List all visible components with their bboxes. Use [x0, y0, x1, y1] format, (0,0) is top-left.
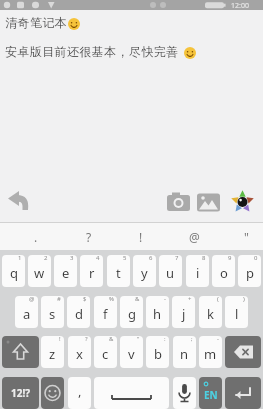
staticText: u: [166, 264, 175, 282]
button[interactable]: x: [68, 336, 91, 368]
button[interactable]: j: [172, 296, 195, 328]
staticText: 0: [254, 255, 258, 262]
staticText: 7: [175, 255, 179, 262]
staticText: q: [10, 264, 18, 282]
staticText: 2: [44, 255, 48, 262]
button[interactable]: i: [186, 255, 209, 287]
button[interactable]: [4, 188, 36, 216]
button[interactable]: !: [128, 223, 154, 250]
button[interactable]: d: [67, 296, 90, 328]
button[interactable]: [173, 377, 196, 409]
staticText: ": [244, 229, 249, 245]
staticText: !: [59, 336, 61, 343]
button[interactable]: z: [41, 336, 64, 368]
staticText: p: [246, 264, 254, 282]
staticText: -: [217, 336, 219, 343]
staticText: -: [164, 296, 166, 303]
staticText: o: [220, 264, 228, 282]
staticText: ?: [85, 336, 88, 343]
button[interactable]: y: [133, 255, 156, 287]
staticText: ": [137, 336, 140, 343]
button[interactable]: c: [94, 336, 117, 368]
staticText: v: [128, 345, 135, 363]
staticText: d: [75, 305, 83, 323]
button[interactable]: [94, 377, 169, 409]
staticText: 5: [123, 255, 127, 262]
staticText: ;: [191, 336, 193, 343]
button[interactable]: p: [238, 255, 261, 287]
button[interactable]: [165, 190, 193, 214]
staticText: %: [109, 296, 114, 303]
button[interactable]: s: [41, 296, 64, 328]
staticText: 3: [70, 255, 74, 262]
button[interactable]: b: [146, 336, 169, 368]
button[interactable]: [225, 377, 261, 409]
button[interactable]: [41, 377, 64, 409]
staticText: 清奇笔记本: [5, 15, 67, 30]
button[interactable]: r: [80, 255, 103, 287]
staticText: +: [188, 296, 192, 303]
button[interactable]: m: [199, 336, 222, 368]
button[interactable]: q: [2, 255, 25, 287]
button[interactable]: f: [94, 296, 117, 328]
staticText: 8: [202, 255, 206, 262]
staticText: k: [207, 305, 214, 323]
staticText: @: [189, 229, 200, 245]
button[interactable]: n: [173, 336, 196, 368]
staticText: $: [83, 296, 87, 303]
staticText: a: [23, 305, 31, 323]
button[interactable]: ,: [68, 377, 91, 409]
staticText: h: [153, 305, 162, 323]
button[interactable]: EN: [199, 377, 222, 409]
staticText: 12!?: [11, 386, 31, 400]
staticText: :: [164, 336, 166, 343]
button[interactable]: [229, 188, 257, 216]
staticText: j: [182, 305, 186, 323]
staticText: l: [235, 305, 239, 323]
staticText: 1: [18, 255, 22, 262]
button[interactable]: l: [225, 296, 248, 328]
staticText: 12:00: [231, 1, 249, 11]
staticText: r: [89, 264, 95, 282]
button[interactable]: v: [120, 336, 143, 368]
button[interactable]: @: [181, 223, 207, 250]
staticText: ): [243, 296, 245, 303]
button[interactable]: [195, 190, 223, 214]
staticText: z: [49, 345, 56, 363]
staticText: #: [57, 296, 61, 303]
staticText: n: [180, 345, 189, 363]
staticText: y: [141, 264, 148, 282]
button[interactable]: ?: [76, 223, 102, 250]
staticText: g: [128, 305, 136, 323]
button[interactable]: u: [159, 255, 182, 287]
button[interactable]: 12!?: [2, 377, 39, 409]
button[interactable]: g: [120, 296, 143, 328]
button[interactable]: [225, 336, 261, 368]
staticText: w: [34, 264, 45, 282]
staticText: c: [102, 345, 109, 363]
button[interactable]: .: [23, 223, 49, 250]
button[interactable]: [2, 336, 39, 368]
button[interactable]: e: [54, 255, 77, 287]
staticText: (: [217, 296, 219, 303]
staticText: 6: [149, 255, 153, 262]
staticText: &: [135, 296, 140, 303]
button[interactable]: o: [212, 255, 235, 287]
staticText: ?: [86, 229, 92, 245]
staticText: 9: [228, 255, 232, 262]
button[interactable]: h: [146, 296, 169, 328]
button[interactable]: w: [28, 255, 51, 287]
staticText: &: [109, 336, 114, 343]
button[interactable]: a: [15, 296, 38, 328]
staticText: s: [49, 305, 56, 323]
button[interactable]: k: [199, 296, 222, 328]
staticText: i: [196, 264, 200, 282]
staticText: EN: [204, 388, 218, 402]
staticText: 安卓版目前还很基本，尽快完善: [5, 44, 179, 59]
staticText: @: [29, 296, 35, 303]
button[interactable]: ": [233, 223, 259, 250]
button[interactable]: t: [107, 255, 130, 287]
staticText: ,: [78, 382, 82, 400]
staticText: x: [76, 345, 83, 363]
staticText: m: [204, 345, 217, 363]
